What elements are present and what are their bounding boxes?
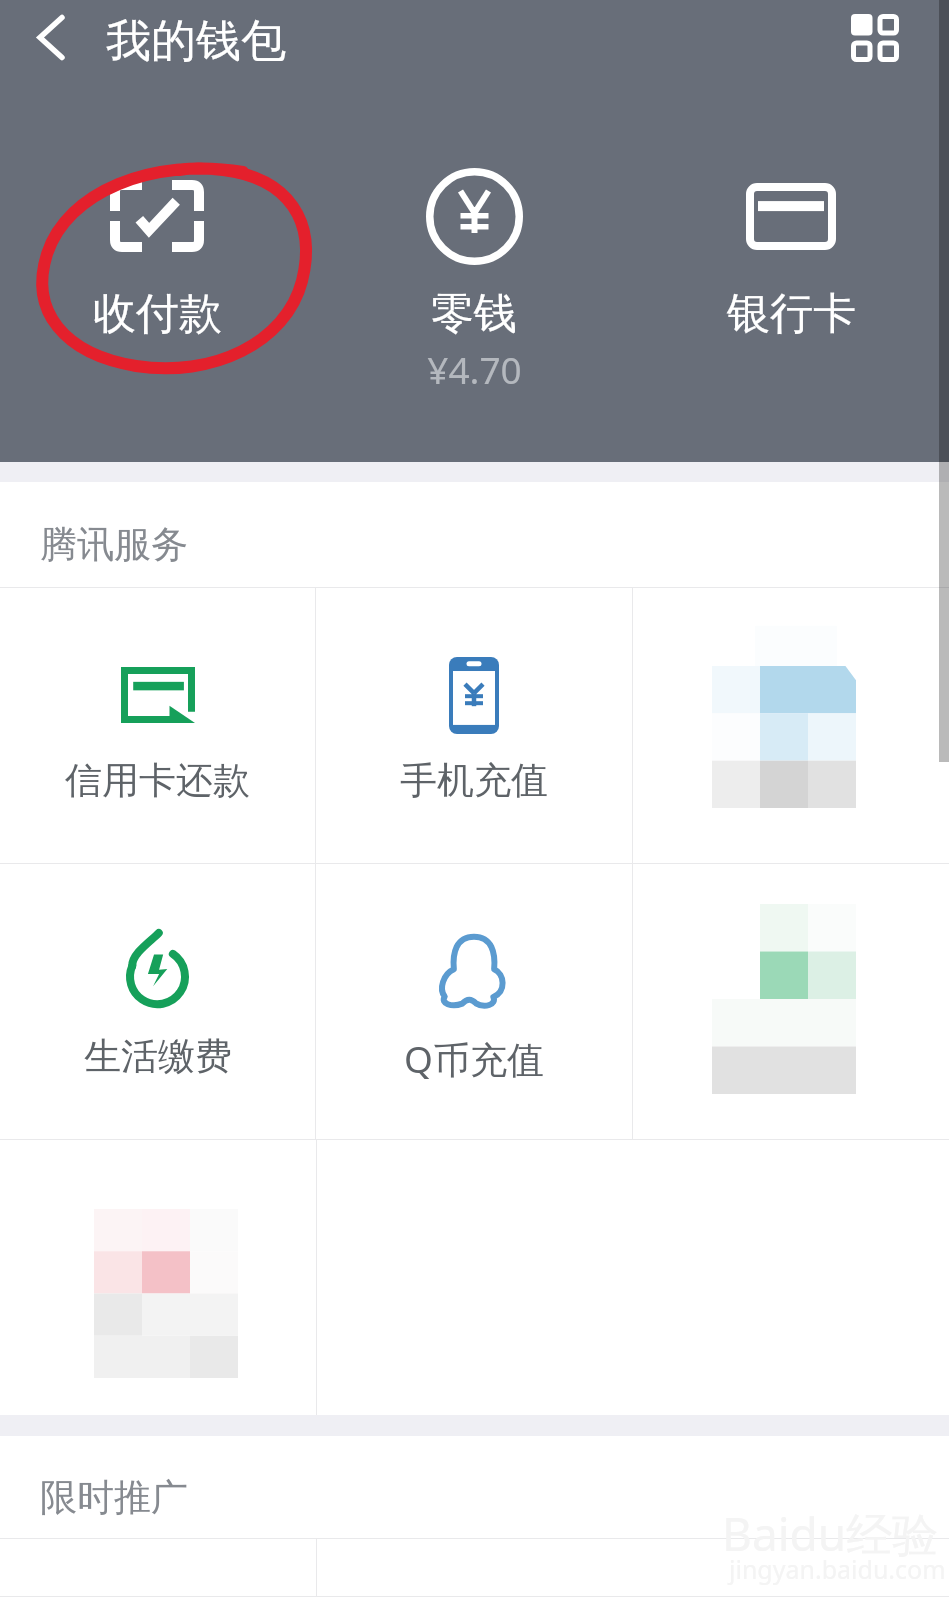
button[interactable]: 手机充值 bbox=[316, 588, 632, 863]
button[interactable]: Service bbox=[633, 864, 949, 1139]
staticText: jingyan.baidu.com bbox=[729, 1552, 946, 1586]
staticText: Baidu经验 bbox=[722, 1502, 939, 1565]
button[interactable]: 零钱 bbox=[316, 140, 632, 402]
button[interactable]: Menu bbox=[827, 0, 923, 80]
button[interactable]: Back bbox=[10, 0, 100, 80]
staticText: 生活缴费 bbox=[84, 1033, 232, 1080]
button[interactable]: 银行卡 bbox=[633, 140, 949, 402]
staticText: Q币充值 bbox=[404, 1033, 544, 1084]
staticText: 银行卡 bbox=[727, 287, 856, 341]
staticText: 腾讯服务 bbox=[40, 521, 188, 568]
button[interactable]: 生活缴费 bbox=[0, 864, 315, 1139]
staticText: 收付款 bbox=[93, 287, 222, 341]
button[interactable]: Q币充值 bbox=[316, 864, 632, 1139]
staticText: 零钱 bbox=[431, 287, 517, 341]
button[interactable]: 信用卡还款 bbox=[0, 588, 315, 863]
button[interactable]: Service bbox=[633, 588, 949, 863]
staticText: 手机充值 bbox=[400, 757, 548, 804]
staticText: 限时推广 bbox=[40, 1474, 188, 1521]
staticText: 我的钱包 bbox=[106, 13, 286, 70]
button[interactable]: Service bbox=[0, 1140, 316, 1415]
staticText: 信用卡还款 bbox=[65, 757, 250, 804]
button[interactable]: 收付款 bbox=[0, 140, 315, 402]
staticText: ¥4.70 bbox=[427, 344, 522, 394]
